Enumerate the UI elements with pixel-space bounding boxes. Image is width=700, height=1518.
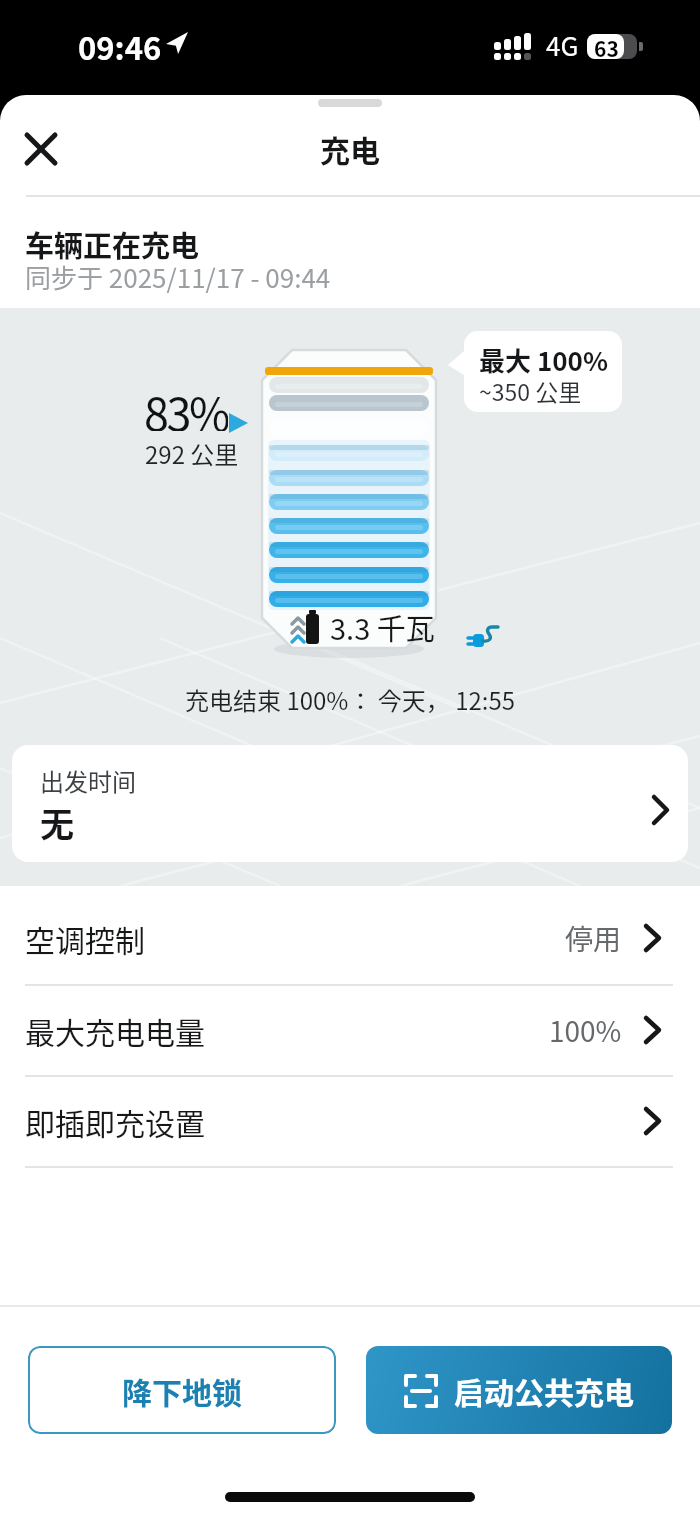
- button[interactable]: 空调控制: [0, 893, 700, 984]
- button[interactable]: 最大充电电量: [0, 986, 700, 1075]
- staticText: 车辆正在充电: [25, 223, 200, 263]
- button[interactable]: 启动公共充电: [366, 1346, 672, 1434]
- staticText: 292 公里: [145, 436, 239, 470]
- staticText: 停用: [565, 918, 622, 959]
- staticText: 即插即充设置: [25, 1100, 205, 1143]
- button[interactable]: 出发时间: [12, 745, 688, 862]
- staticText: 同步于 2025/11/17 - 09:44: [25, 258, 331, 296]
- staticText: 83%: [144, 379, 228, 431]
- button[interactable]: 降下地锁: [28, 1346, 336, 1434]
- staticText: 充电结束 100%： 今天， 12:55: [185, 682, 516, 717]
- staticText: 3.3 千瓦: [330, 606, 435, 648]
- staticText: 充电: [320, 127, 380, 169]
- button[interactable]: 即插即充设置: [0, 1077, 700, 1166]
- staticText: 09:46: [78, 24, 162, 64]
- staticText: 4G: [546, 26, 579, 62]
- staticText: 最大充电电量: [25, 1009, 205, 1052]
- staticText: 63: [594, 33, 619, 60]
- staticText: 降下地锁: [122, 1369, 242, 1412]
- staticText: ~350 公里: [479, 374, 582, 404]
- staticText: 最大 100%: [479, 341, 608, 375]
- staticText: 无: [40, 798, 74, 842]
- staticText: 出发时间: [40, 763, 136, 797]
- staticText: 启动公共充电: [454, 1369, 634, 1412]
- staticText: 100%: [549, 1010, 622, 1051]
- staticText: 空调控制: [25, 917, 145, 960]
- button[interactable]: [15, 123, 67, 175]
